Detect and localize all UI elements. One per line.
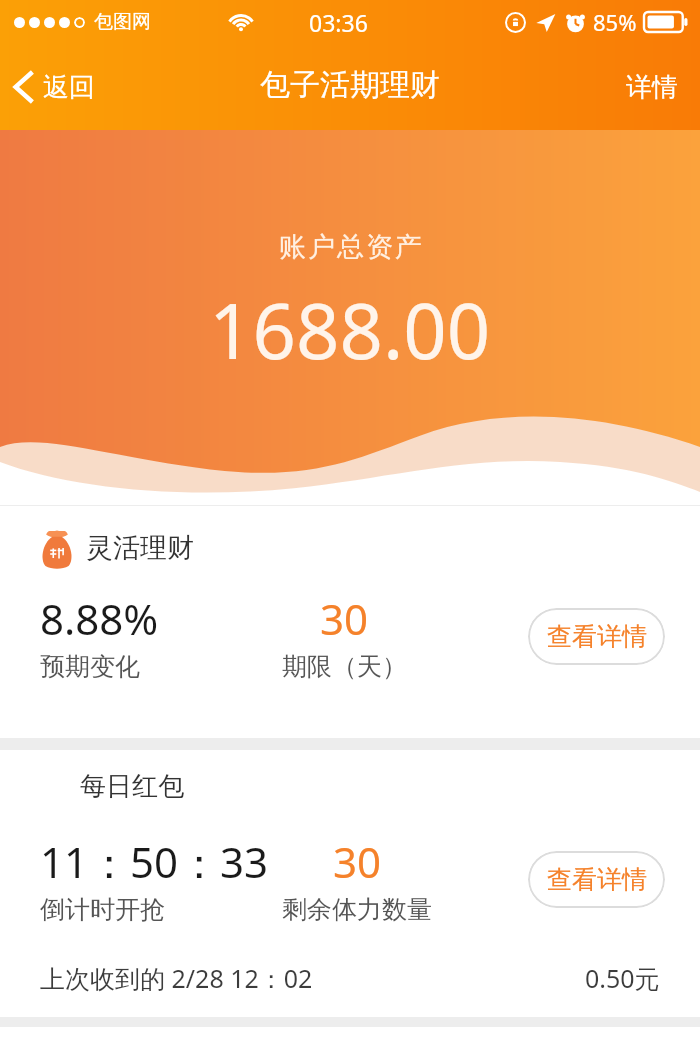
staticText: 30 (320, 590, 369, 647)
staticText: 灵活理财 (86, 531, 194, 565)
staticText: 8.88% (40, 590, 159, 647)
staticText: 1688.00 (209, 278, 491, 382)
staticText: 每日红包 (80, 770, 184, 803)
staticText: 上次收到的 2/28 12：02 (40, 961, 313, 995)
button[interactable]: 详情 (604, 44, 700, 130)
staticText: 返回 (43, 71, 95, 104)
staticText: 包子活期理财 (260, 66, 440, 104)
staticText: 账户总资产 (278, 230, 423, 264)
staticText: 查看详情 (547, 621, 647, 652)
staticText: 预期变化 (40, 651, 140, 682)
button[interactable]: 查看详情 (528, 608, 665, 665)
staticText: 查看详情 (547, 864, 647, 895)
button[interactable]: 返回 (0, 44, 111, 130)
button[interactable]: 查看详情 (528, 851, 665, 908)
staticText: 03:36 (309, 7, 368, 38)
staticText: 包图网 (94, 10, 151, 34)
staticText: 期限（天） (282, 651, 407, 682)
staticText: 详情 (626, 71, 678, 104)
staticText: 倒计时开抢 (40, 894, 165, 925)
staticText: 11：50：33 (40, 833, 269, 890)
staticText: 剩余体力数量 (282, 894, 432, 925)
staticText: 0.50元 (585, 961, 660, 995)
staticText: 30 (333, 833, 382, 890)
staticText: 85% (593, 7, 637, 37)
